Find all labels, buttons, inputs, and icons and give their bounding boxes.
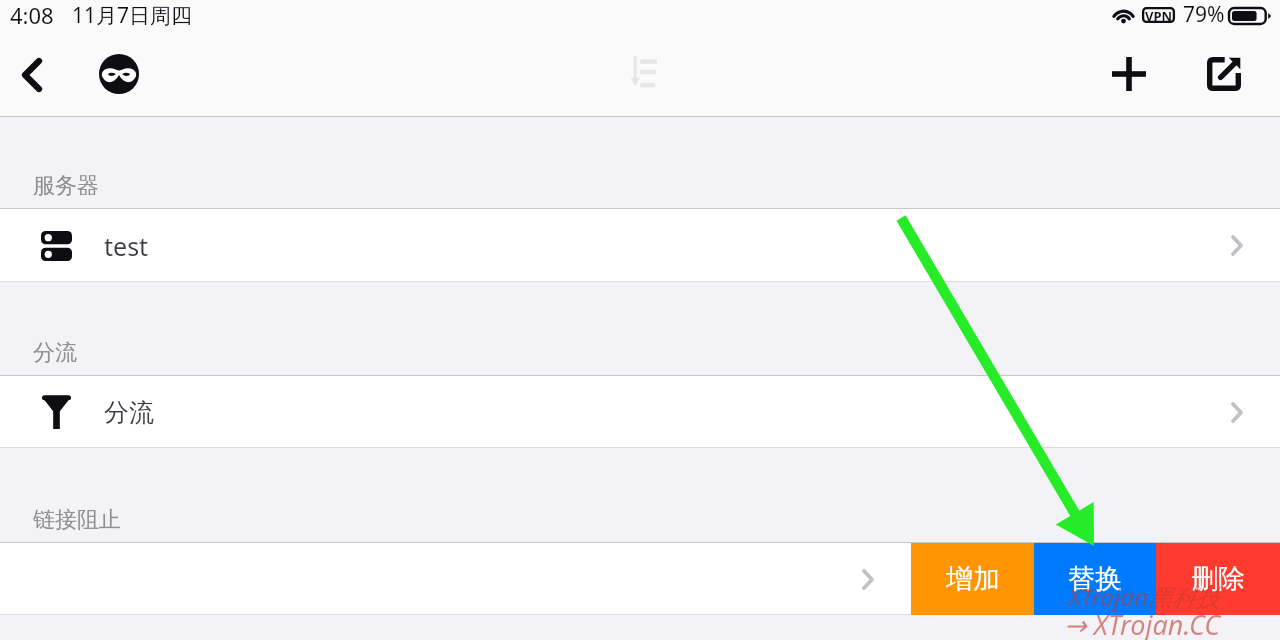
staticText: 服务器 (33, 172, 99, 200)
staticText: 4:08 (10, 0, 54, 30)
staticText: 增加 (946, 562, 1000, 596)
button[interactable]: Sort (622, 49, 666, 93)
staticText: VPN (1145, 7, 1173, 23)
staticText: 分流 (104, 397, 154, 428)
button[interactable]: 增加 (911, 543, 1034, 615)
button[interactable]: test (0, 209, 1280, 282)
button[interactable]: Back (6, 49, 58, 101)
button[interactable]: 删除 (1156, 543, 1280, 615)
staticText: test (104, 229, 149, 263)
button[interactable]: Shadowrocket (95, 50, 143, 98)
button[interactable]: 分流 (0, 376, 1280, 448)
staticText: 11月7日周四 (72, 1, 193, 30)
staticText: XTrojan黑科技 (1068, 580, 1220, 613)
staticText: → XTrojan.CC (1064, 606, 1221, 640)
button[interactable]: 链接阻止规则 (0, 543, 911, 615)
staticText: 79% (1183, 0, 1225, 29)
button[interactable]: Share (1200, 50, 1248, 98)
staticText: 分流 (33, 339, 77, 367)
button[interactable]: 替换 (1034, 543, 1156, 615)
button[interactable]: Add (1105, 50, 1153, 98)
staticText: 替换 (1068, 562, 1122, 596)
staticText: 链接阻止 (33, 506, 121, 534)
staticText: 删除 (1191, 562, 1245, 596)
